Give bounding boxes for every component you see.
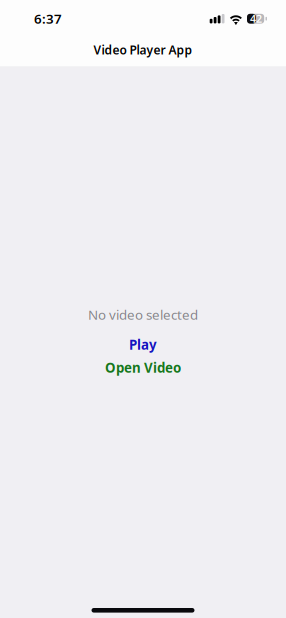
staticText: No video selected — [88, 306, 198, 323]
staticText: 6:37 — [34, 10, 62, 27]
button[interactable]: Open Video — [96, 358, 190, 378]
staticText: Open Video — [105, 359, 181, 376]
button[interactable]: Play — [106, 335, 180, 355]
staticText: 42 — [250, 12, 262, 26]
staticText: Play — [129, 336, 157, 353]
staticText: Video Player App — [93, 42, 192, 58]
